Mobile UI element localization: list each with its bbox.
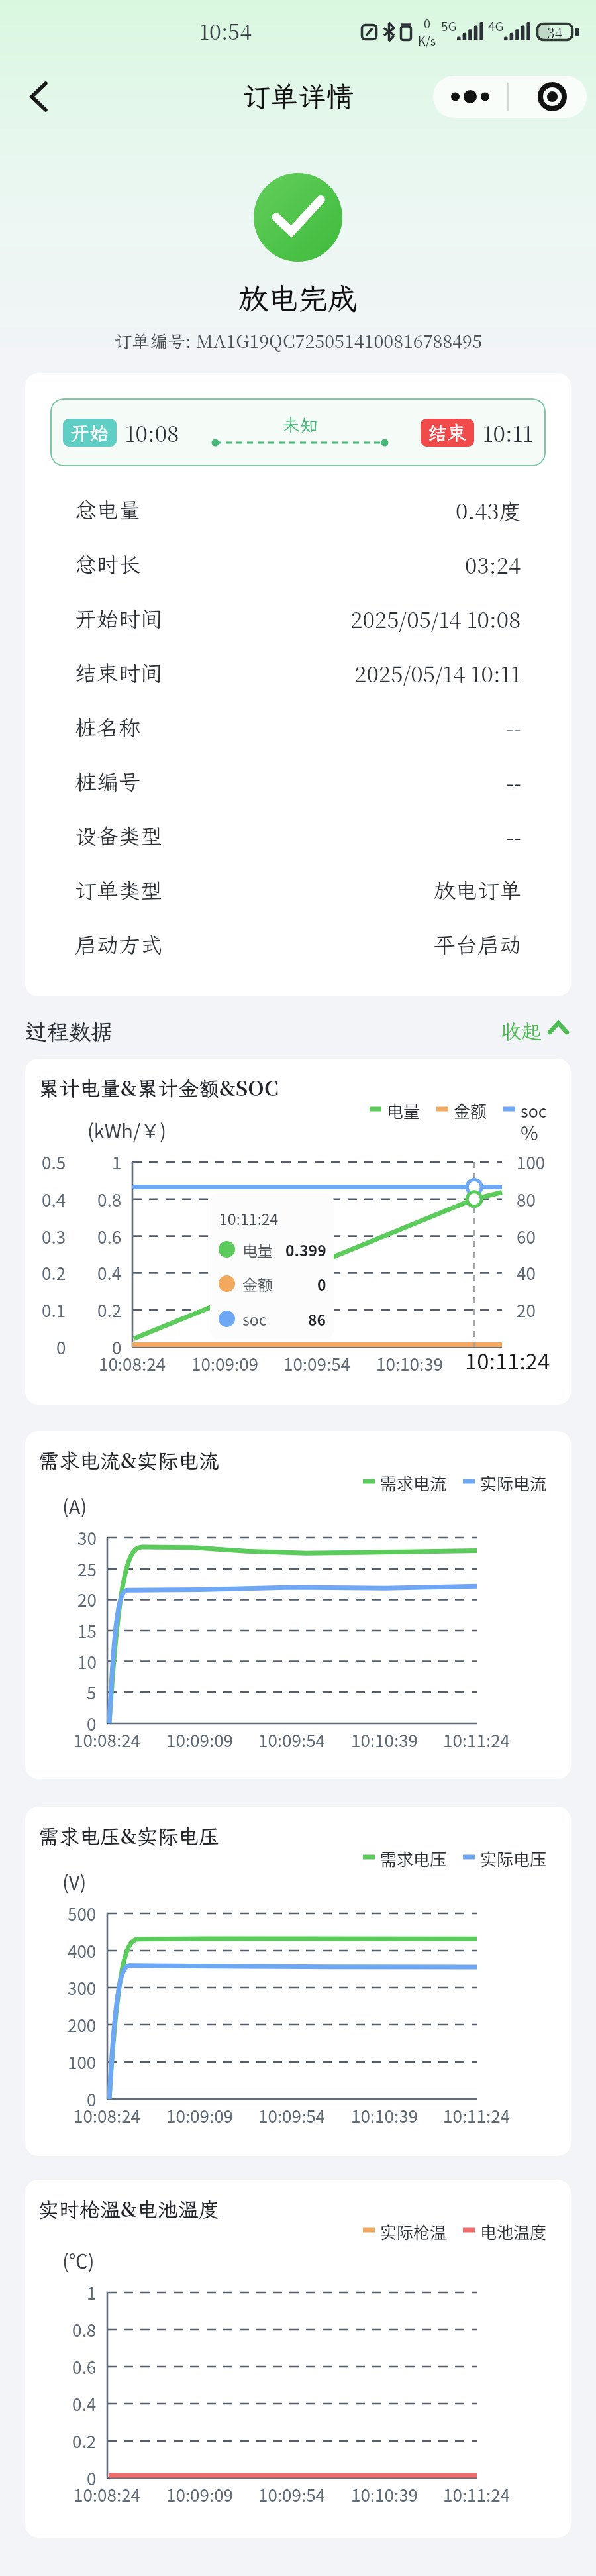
staticText: 10:10:39 bbox=[351, 2103, 419, 2128]
staticText: 10:08:24 bbox=[74, 1727, 141, 1752]
staticText: 25 bbox=[77, 1556, 97, 1582]
staticText: 电量 bbox=[387, 1099, 421, 1120]
staticText: 1 bbox=[87, 2280, 97, 2305]
staticText: 0.8 bbox=[72, 2317, 97, 2342]
staticText: 0.3 bbox=[42, 1224, 66, 1249]
staticText: 0 bbox=[56, 1334, 66, 1360]
staticText: 总电量 bbox=[75, 496, 140, 524]
staticText: 0 bbox=[112, 1334, 122, 1360]
staticText: 实际枪温 bbox=[380, 2220, 447, 2241]
staticText: 平台启动 bbox=[434, 930, 521, 959]
staticText: 10:09:54 bbox=[258, 2482, 326, 2507]
staticText: 0.4 bbox=[97, 1260, 122, 1285]
staticText: (℃) bbox=[62, 2246, 95, 2274]
staticText: 10:11:24 bbox=[465, 1344, 550, 1376]
staticText: 0 bbox=[87, 1711, 97, 1736]
staticText: 0.4 bbox=[72, 2391, 97, 2416]
staticText: -- bbox=[506, 766, 521, 797]
button[interactable]: 收起 bbox=[498, 1015, 571, 1047]
staticText: 0.6 bbox=[72, 2354, 97, 2379]
staticText: 需求电流&实际电流 bbox=[38, 1444, 219, 1474]
staticText: 过程数据 bbox=[25, 1017, 113, 1046]
staticText: 需求电压 bbox=[380, 1847, 447, 1868]
staticText: 桩名称 bbox=[75, 713, 140, 741]
staticText: 10:08 bbox=[125, 417, 179, 448]
staticText: 实际电流 bbox=[480, 1471, 547, 1492]
staticText: 开始 bbox=[70, 420, 109, 445]
staticText: 10:11:24 bbox=[443, 2103, 511, 2128]
staticText: 10:08:24 bbox=[74, 2482, 141, 2507]
staticText: 10:09:54 bbox=[283, 1351, 351, 1376]
staticText: % bbox=[521, 1118, 538, 1146]
staticText: 启动方式 bbox=[75, 930, 162, 959]
staticText: soc bbox=[242, 1308, 267, 1330]
staticText: 03:24 bbox=[465, 549, 521, 580]
staticText: 放电完成 bbox=[238, 279, 358, 318]
staticText: 0.1 bbox=[42, 1297, 66, 1322]
staticText: 10:10:39 bbox=[351, 1727, 419, 1752]
staticText: 累计电量&累计金额&SOC bbox=[38, 1072, 279, 1102]
staticText: 10:11:24 bbox=[219, 1207, 279, 1229]
staticText: 1 bbox=[112, 1150, 122, 1175]
staticText: 10:09:09 bbox=[166, 2103, 234, 2128]
staticText: 10:11 bbox=[483, 417, 533, 448]
staticText: 总时长 bbox=[75, 550, 140, 578]
staticText: 0.2 bbox=[97, 1297, 122, 1322]
staticText: 实际电压 bbox=[480, 1847, 547, 1868]
staticText: 0.8 bbox=[97, 1187, 122, 1212]
staticText: 结束 bbox=[428, 420, 467, 445]
staticText: 订单编号: MA1G19QC7250514100816788495 bbox=[114, 327, 482, 353]
staticText: 0 bbox=[317, 1273, 326, 1295]
button[interactable]: Close mini program bbox=[518, 76, 587, 118]
staticText: 开始时间 bbox=[75, 604, 162, 633]
staticText: 2025/05/14 10:08 bbox=[350, 603, 521, 634]
staticText: 80 bbox=[517, 1187, 536, 1212]
staticText: 34 bbox=[547, 23, 563, 41]
staticText: 15 bbox=[77, 1618, 97, 1643]
staticText: 放电订单 bbox=[434, 876, 521, 904]
staticText: 需求电流 bbox=[380, 1471, 447, 1492]
staticText: 200 bbox=[68, 2012, 97, 2037]
staticText: 收起 bbox=[501, 1018, 542, 1045]
staticText: 0.2 bbox=[72, 2428, 97, 2453]
staticText: 20 bbox=[77, 1587, 97, 1612]
staticText: (kWh/￥) bbox=[87, 1116, 167, 1144]
staticText: 结束时间 bbox=[75, 659, 162, 687]
staticText: 订单类型 bbox=[75, 876, 162, 904]
staticText: 需求电压&实际电压 bbox=[38, 1820, 219, 1850]
staticText: 10 bbox=[77, 1649, 97, 1674]
staticText: 实时枪温&电池温度 bbox=[38, 2193, 219, 2223]
staticText: -- bbox=[506, 820, 521, 851]
staticText: 0 bbox=[424, 15, 430, 32]
staticText: -- bbox=[506, 712, 521, 743]
staticText: 0 bbox=[87, 2465, 97, 2491]
staticText: 40 bbox=[517, 1260, 536, 1285]
staticText: 400 bbox=[68, 1938, 97, 1963]
staticText: (A) bbox=[62, 1491, 87, 1519]
button[interactable]: Back bbox=[17, 76, 60, 118]
staticText: 300 bbox=[68, 1975, 97, 2000]
staticText: 86 bbox=[308, 1308, 326, 1330]
staticText: 10:09:54 bbox=[258, 2103, 326, 2128]
staticText: soc bbox=[521, 1099, 547, 1120]
staticText: 5 bbox=[87, 1680, 97, 1705]
staticText: 0.6 bbox=[97, 1224, 122, 1249]
staticText: 0.399 bbox=[285, 1238, 326, 1260]
staticText: 100 bbox=[517, 1150, 546, 1175]
button[interactable]: More options bbox=[433, 76, 507, 118]
staticText: K/s bbox=[418, 32, 436, 49]
staticText: 10:11:24 bbox=[443, 1727, 511, 1752]
staticText: 10:10:39 bbox=[376, 1351, 444, 1376]
staticText: 0.4 bbox=[42, 1187, 66, 1212]
staticText: 10:09:54 bbox=[258, 1727, 326, 1752]
staticText: 10:54 bbox=[199, 15, 252, 46]
staticText: 订单详情 bbox=[242, 78, 354, 115]
staticText: 10:10:39 bbox=[351, 2482, 419, 2507]
staticText: 10:08:24 bbox=[99, 1351, 166, 1376]
staticText: 20 bbox=[517, 1297, 536, 1322]
staticText: 金额 bbox=[454, 1099, 487, 1120]
staticText: 10:11:24 bbox=[443, 2482, 511, 2507]
staticText: 500 bbox=[68, 1901, 97, 1926]
staticText: 电量 bbox=[242, 1238, 273, 1260]
staticText: 30 bbox=[77, 1525, 97, 1550]
